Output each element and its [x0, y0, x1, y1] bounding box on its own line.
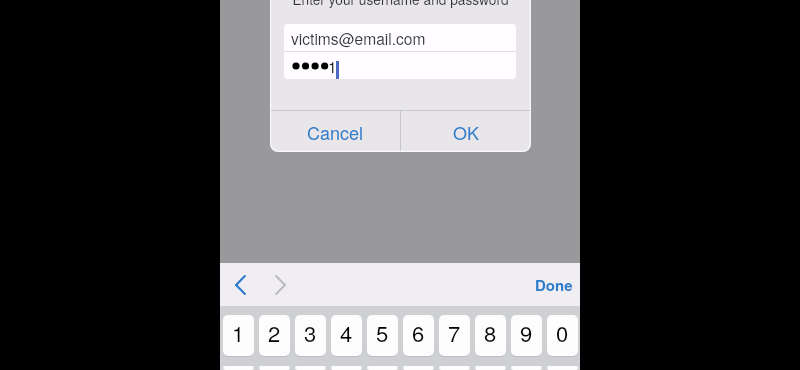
button[interactable]: [439, 366, 470, 370]
staticText: victims@email.com: [291, 27, 426, 49]
button[interactable]: [223, 366, 254, 370]
staticText: OK: [453, 119, 480, 145]
staticText: 0: [556, 317, 569, 349]
button[interactable]: 9: [511, 315, 542, 356]
button[interactable]: [259, 366, 290, 370]
button[interactable]: OK: [401, 111, 531, 152]
button[interactable]: [295, 366, 326, 370]
button[interactable]: 6: [403, 315, 434, 356]
button[interactable]: 0: [547, 315, 578, 356]
button[interactable]: Previous field: [222, 263, 259, 306]
staticText: 1: [328, 55, 337, 77]
button[interactable]: 1: [223, 315, 254, 356]
staticText: Done: [535, 274, 573, 295]
button[interactable]: Cancel: [270, 111, 400, 152]
button[interactable]: [403, 366, 434, 370]
button[interactable]: 3: [295, 315, 326, 356]
staticText: 6: [412, 317, 425, 349]
staticText: 8: [484, 317, 497, 349]
button[interactable]: [367, 366, 398, 370]
staticText: 3: [304, 317, 317, 349]
button[interactable]: [547, 366, 578, 370]
button[interactable]: Done: [535, 263, 573, 306]
staticText: 1: [232, 317, 245, 349]
button[interactable]: 7: [439, 315, 470, 356]
staticText: Enter your username and password: [292, 0, 509, 9]
button[interactable]: 4: [331, 315, 362, 356]
button[interactable]: 2: [259, 315, 290, 356]
button[interactable]: [475, 366, 506, 370]
staticText: 5: [376, 317, 389, 349]
button[interactable]: Next field: [262, 263, 299, 306]
button[interactable]: [331, 366, 362, 370]
staticText: 4: [340, 317, 353, 349]
button[interactable]: [511, 366, 542, 370]
button[interactable]: 8: [475, 315, 506, 356]
staticText: 7: [448, 317, 461, 349]
button[interactable]: 5: [367, 315, 398, 356]
staticText: 9: [520, 317, 533, 349]
staticText: 2: [268, 317, 281, 349]
staticText: Cancel: [307, 119, 364, 145]
